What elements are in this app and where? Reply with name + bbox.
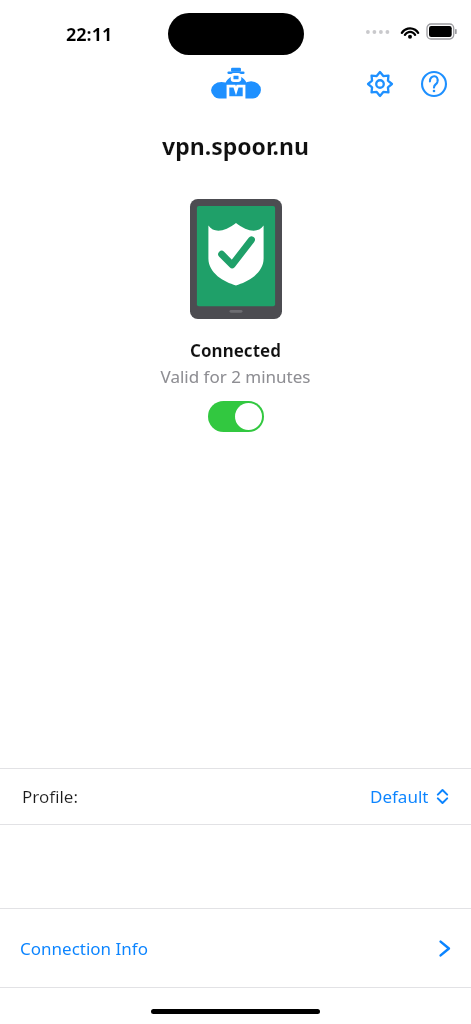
staticText: Profile:	[22, 785, 79, 808]
button[interactable]: Connection Info	[0, 909, 471, 987]
staticText: Connection Info	[20, 937, 148, 960]
button[interactable]: Settings	[360, 64, 400, 104]
button[interactable]: VPN logo	[208, 64, 264, 104]
staticText: Connected	[0, 339, 471, 362]
button[interactable]: Profile:	[0, 769, 471, 824]
button[interactable]: VPN connection toggle	[208, 401, 264, 432]
staticText: vpn.spoor.nu	[0, 130, 471, 161]
button[interactable]: Help	[414, 64, 454, 104]
staticText: Default	[370, 785, 429, 808]
staticText: Valid for 2 minutes	[0, 365, 471, 388]
staticText: 22:11	[66, 22, 113, 47]
